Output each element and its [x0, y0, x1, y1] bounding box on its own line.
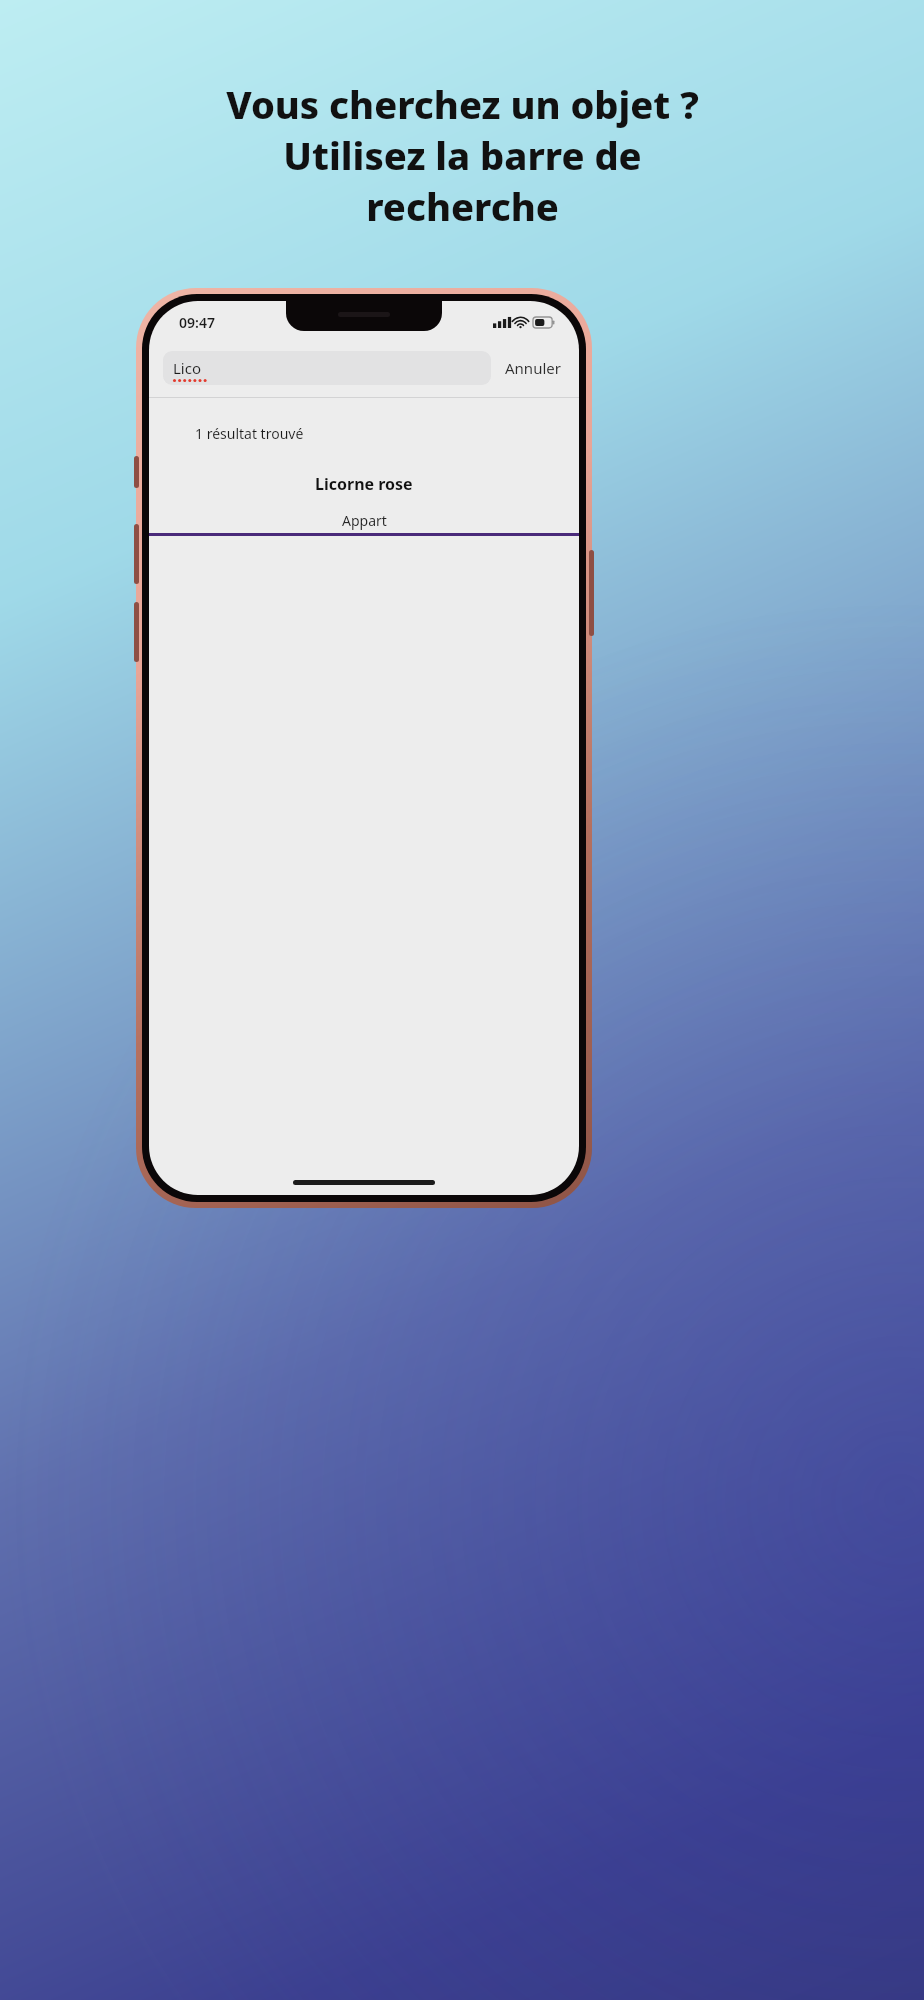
button[interactable]: Lico: [163, 351, 491, 385]
staticText: Lico: [173, 358, 202, 378]
staticText: Licorne rose: [315, 473, 413, 495]
staticText: 09:47: [179, 313, 215, 332]
button[interactable]: Annuler: [501, 352, 565, 384]
staticText: 1 résultat trouvé: [195, 424, 304, 443]
staticText: Vous cherchez un objet ? Utilisez la bar…: [226, 78, 699, 232]
staticText: Annuler: [505, 358, 561, 378]
button[interactable]: Licorne rose: [149, 473, 579, 669]
staticText: Appart: [342, 511, 387, 530]
